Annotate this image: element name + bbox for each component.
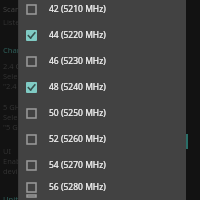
button[interactable]: 44 (5220 MHz) [18,22,186,48]
button[interactable]: 52 (5260 MHz) [18,126,186,152]
staticText: 56 (5280 MHz) [49,181,106,193]
staticText: Scan settings [3,4,50,14]
button[interactable]: 42 (5210 MHz) [18,0,186,22]
staticText: 54 (5270 MHz) [49,159,106,171]
staticText: Units [3,194,22,200]
staticText: 5 GHz c [3,102,30,112]
staticText: 46 (5230 MHz) [49,55,106,67]
staticText: Enable [3,156,27,166]
staticText: Select th [3,112,34,122]
staticText: 44 (5220 MHz) [49,29,106,41]
button[interactable]: 54 (5270 MHz) [18,152,186,178]
button[interactable]: 50 (5250 MHz) [18,100,186,126]
staticText: "5 GHz [3,122,27,132]
staticText: Select the [3,71,38,81]
button[interactable]: 48 (5240 MHz) [18,74,186,100]
staticText: 50 (5250 MHz) [49,107,106,119]
staticText: Channels [3,45,37,55]
button[interactable]: 46 (5230 MHz) [18,48,186,74]
staticText: "2.4 GH [3,81,30,91]
staticText: 42 (5210 MHz) [49,3,106,15]
staticText: Listen only [3,17,41,27]
button[interactable]: 56 (5280 MHz) [18,178,186,196]
staticText: 2.4 GHz [3,61,31,71]
staticText: 48 (5240 MHz) [49,81,106,93]
staticText: UI [3,146,12,156]
staticText: 52 (5260 MHz) [49,133,106,145]
staticText: device [3,166,26,176]
